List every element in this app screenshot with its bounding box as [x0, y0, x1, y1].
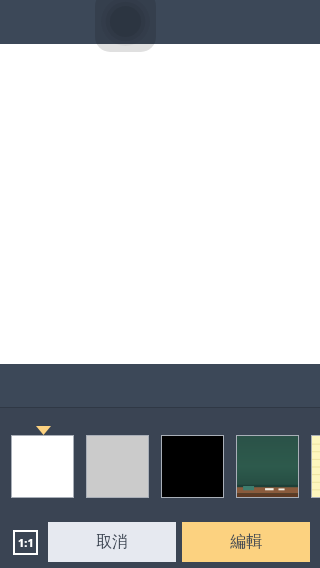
staticText: 編輯	[230, 532, 262, 552]
button[interactable]: Notepad background	[312, 436, 320, 497]
button[interactable]: Chalkboard background	[237, 436, 298, 497]
button[interactable]: 取消	[48, 522, 176, 562]
staticText: 1:1	[18, 535, 34, 550]
button[interactable]: Aspect ratio 1 to 1	[13, 530, 38, 555]
button[interactable]: 編輯	[182, 522, 310, 562]
staticText: 取消	[96, 532, 128, 552]
